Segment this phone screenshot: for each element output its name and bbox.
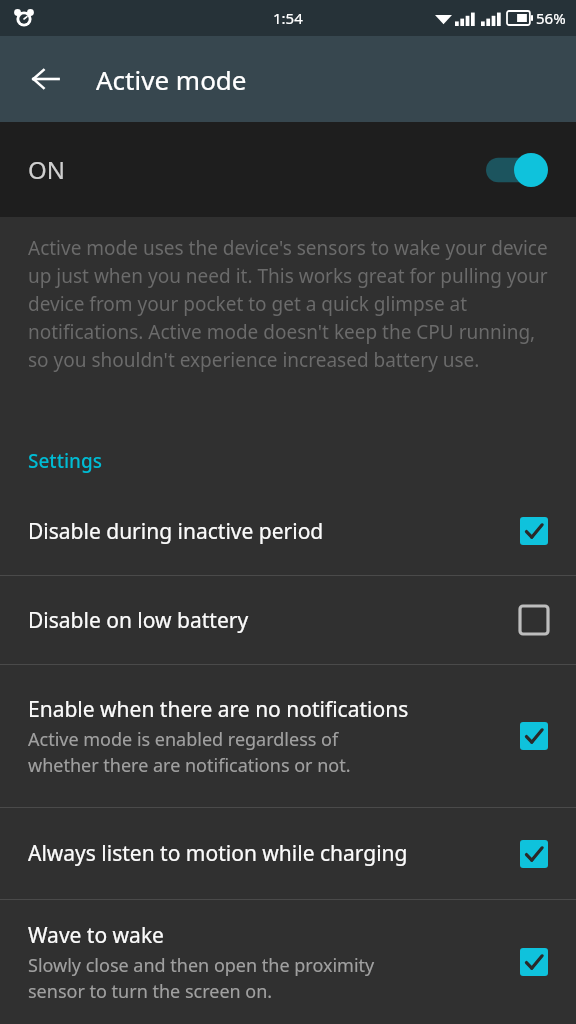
staticText: Always listen to motion while charging [28, 839, 408, 868]
staticText: ON [28, 153, 65, 186]
button[interactable]: Disable during inactive period [0, 487, 576, 575]
staticText: 56% [536, 8, 566, 28]
button[interactable]: Always listen to motion while charging [0, 808, 576, 899]
staticText: 1:54 [273, 8, 303, 28]
staticText: Active mode [96, 62, 247, 97]
staticText: Disable on low battery [28, 606, 249, 635]
staticText: Settings [28, 448, 102, 474]
button[interactable]: ON [0, 122, 576, 217]
button[interactable]: Enable when there are no notifications [0, 665, 576, 807]
button[interactable]: Back [18, 51, 74, 107]
staticText: Slowly close and then open the proximity… [28, 953, 375, 1004]
staticText: Active mode uses the device's sensors to… [28, 235, 550, 373]
staticText: Disable during inactive period [28, 517, 324, 546]
button[interactable]: Disable on low battery [0, 576, 576, 664]
staticText: Enable when there are no notifications [28, 695, 409, 724]
button[interactable]: Wave to wake [0, 900, 576, 1024]
staticText: Active mode is enabled regardless of whe… [28, 727, 351, 778]
staticText: Wave to wake [28, 921, 164, 950]
